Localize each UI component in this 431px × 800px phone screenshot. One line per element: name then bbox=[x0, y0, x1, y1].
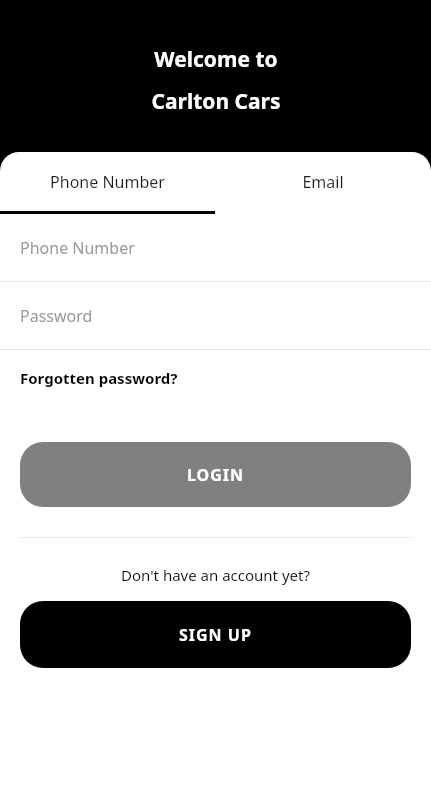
button[interactable]: Phone Number bbox=[0, 152, 215, 211]
button[interactable]: Phone Number bbox=[0, 214, 431, 281]
staticText: SIGN UP bbox=[179, 624, 252, 646]
button[interactable]: SIGN UP bbox=[20, 601, 411, 668]
button[interactable]: Email bbox=[215, 152, 431, 211]
staticText: Password bbox=[20, 305, 93, 327]
staticText: Forgotten password? bbox=[20, 368, 178, 388]
staticText: Carlton Cars bbox=[151, 87, 281, 116]
staticText: Welcome to bbox=[154, 45, 278, 74]
button[interactable]: LOGIN bbox=[20, 442, 411, 507]
staticText: Don't have an account yet? bbox=[0, 565, 431, 585]
staticText: Phone Number bbox=[20, 237, 135, 259]
button[interactable]: Forgotten password? bbox=[0, 350, 431, 405]
staticText: Phone Number bbox=[50, 171, 165, 193]
button[interactable]: Password bbox=[0, 282, 431, 349]
staticText: LOGIN bbox=[187, 464, 245, 486]
staticText: Email bbox=[302, 171, 344, 193]
